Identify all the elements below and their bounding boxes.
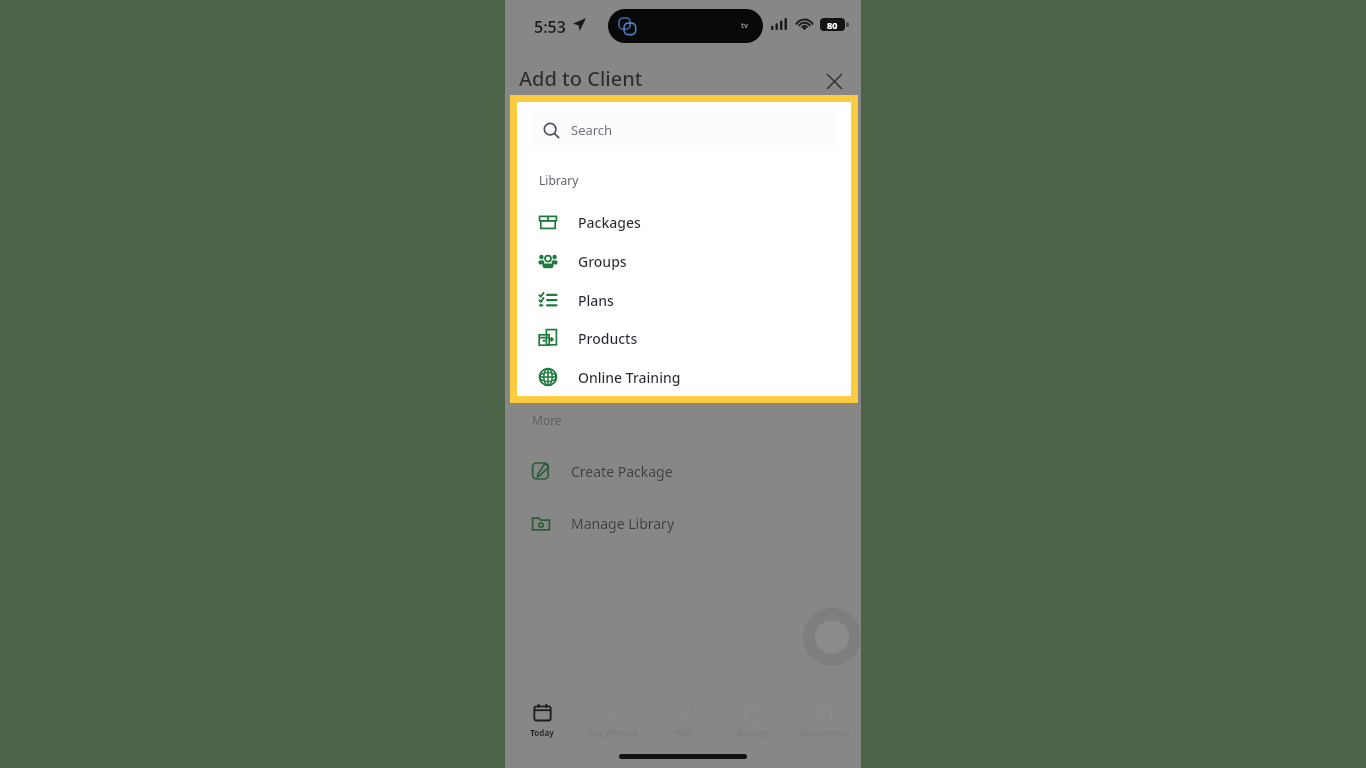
button[interactable]: Online Training	[517, 362, 851, 392]
button[interactable]: Close	[817, 64, 851, 98]
staticText: Assessments	[800, 727, 849, 738]
staticText: Groups	[578, 252, 627, 271]
staticText: More	[532, 412, 562, 428]
staticText: Manage Library	[571, 514, 675, 533]
staticText: Plans	[578, 291, 614, 310]
button[interactable]: Products	[517, 323, 851, 353]
button[interactable]: Plans	[517, 285, 851, 315]
staticText: Help	[674, 727, 692, 738]
button[interactable]: Create Package	[505, 452, 861, 490]
staticText: Booking	[737, 727, 769, 738]
staticText: Search	[571, 121, 613, 139]
button[interactable]: Groups	[517, 246, 851, 276]
staticText: 80	[827, 19, 838, 31]
staticText: 5:53	[534, 16, 566, 38]
button[interactable]: Today	[509, 698, 575, 738]
staticText: Create Package	[571, 462, 673, 481]
staticText: Online Training	[578, 368, 681, 387]
staticText: Library	[539, 172, 579, 188]
staticText: tv	[741, 21, 749, 31]
button[interactable]: Packages	[517, 207, 851, 237]
staticText: Products	[578, 329, 638, 348]
staticText: Today	[530, 727, 554, 738]
button[interactable]: Manage Library	[505, 504, 861, 542]
staticText: Log Workout	[589, 727, 638, 738]
staticText: Packages	[578, 213, 641, 232]
staticText: Add to Client	[519, 65, 643, 92]
button[interactable]: Search	[530, 110, 838, 150]
button[interactable]: Add	[803, 608, 861, 666]
